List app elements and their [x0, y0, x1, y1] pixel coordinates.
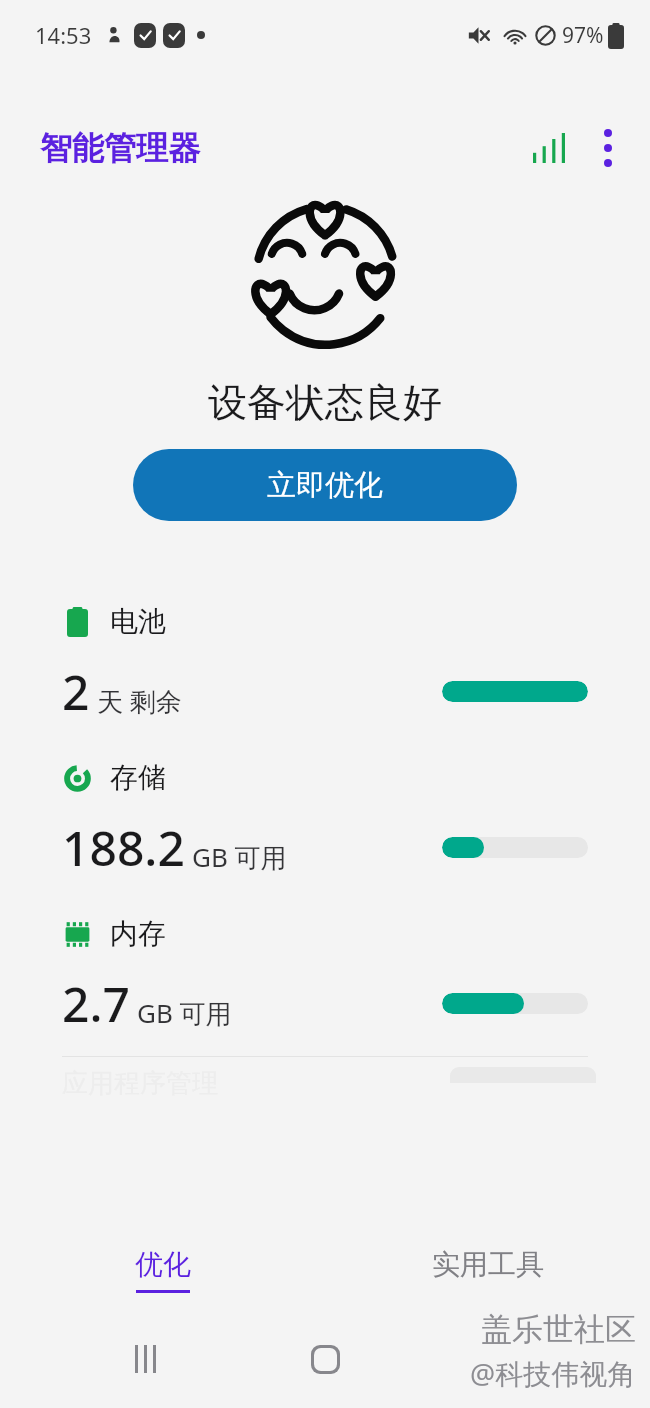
staticText: 存储: [110, 760, 166, 795]
other: Storage: [62, 763, 92, 793]
button[interactable]: 立即优化: [133, 449, 517, 521]
staticText: 智能管理器: [40, 128, 200, 168]
other: Memory: [62, 919, 92, 949]
staticText: 97%: [562, 21, 604, 50]
button[interactable]: 实用工具: [325, 1230, 650, 1310]
staticText: 2: [62, 659, 90, 724]
staticText: 2.7: [62, 971, 130, 1036]
staticText: 天 剩余: [97, 683, 182, 719]
staticText: 电池: [110, 604, 166, 639]
other: Battery: [62, 607, 92, 637]
staticText: 优化: [135, 1247, 191, 1282]
staticText: GB 可用: [137, 995, 232, 1031]
staticText: GB 可用: [192, 839, 287, 875]
button[interactable]: Usage statistics: [522, 121, 576, 175]
staticText: 实用工具: [432, 1247, 544, 1282]
staticText: @科技伟视角: [470, 1354, 636, 1392]
staticText: 盖乐世社区: [481, 1310, 636, 1349]
staticText: 设备状态良好: [208, 378, 442, 427]
staticText: 188.2: [62, 815, 185, 880]
staticText: 内存: [110, 916, 166, 951]
button[interactable]: Battery: [0, 604, 650, 724]
button[interactable]: 优化: [0, 1230, 325, 1310]
button[interactable]: Storage: [0, 760, 650, 880]
staticText: 14:53: [35, 20, 92, 50]
button[interactable]: Recents: [112, 1326, 178, 1392]
button[interactable]: More options: [580, 120, 636, 176]
button[interactable]: Home: [292, 1326, 358, 1392]
staticText: 立即优化: [267, 467, 383, 504]
button[interactable]: Memory: [0, 916, 650, 1036]
